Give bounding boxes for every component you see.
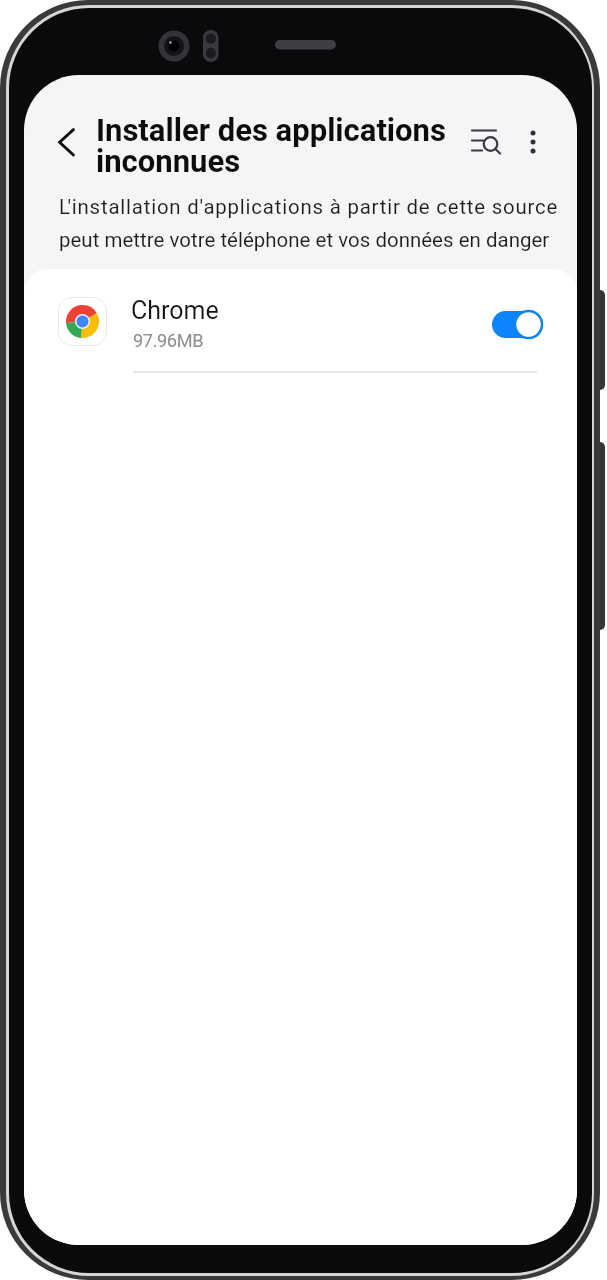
staticText: L'installation d'applications à partir d… <box>59 195 559 219</box>
staticText: Installer des applications inconnues <box>96 112 446 180</box>
button[interactable] <box>460 118 508 166</box>
staticText: Chrome <box>131 296 219 325</box>
button[interactable]: Chrome <box>24 277 577 367</box>
staticText: peut mettre votre téléphone et vos donné… <box>59 228 550 252</box>
staticText: 97.96MB <box>133 330 204 351</box>
button[interactable] <box>490 307 546 341</box>
button[interactable] <box>45 122 93 170</box>
button[interactable] <box>509 118 557 166</box>
